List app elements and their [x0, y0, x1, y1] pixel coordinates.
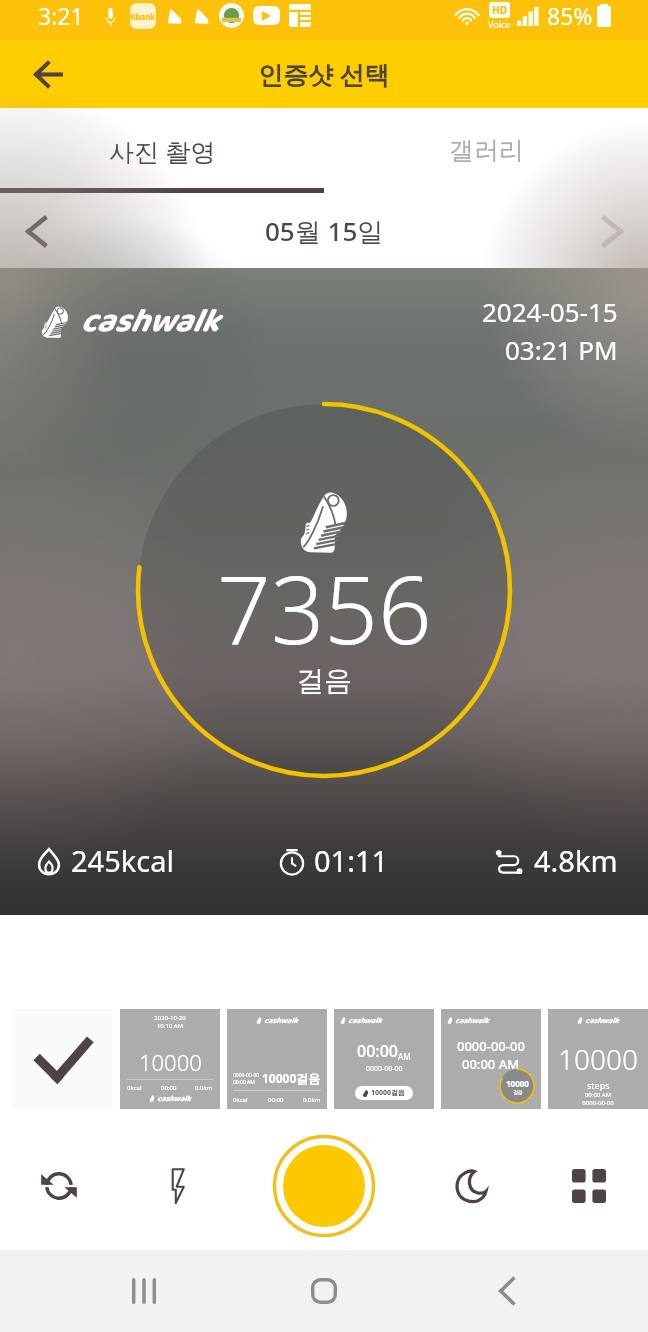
staticText: 01:11	[314, 841, 389, 880]
button[interactable]: Night mode	[436, 1152, 504, 1220]
staticText: 05월 15일	[265, 213, 384, 249]
staticText: cashwalk	[348, 1014, 382, 1027]
staticText: 10000	[506, 1078, 529, 1089]
staticText: cashwalk	[80, 295, 219, 348]
staticText: 걸음	[513, 1089, 523, 1095]
button[interactable]: cashwalk	[227, 1009, 327, 1109]
staticText: Kbank	[130, 11, 156, 22]
button[interactable]: Back	[14, 40, 82, 108]
button[interactable]	[13, 1009, 113, 1109]
staticText: 10000	[139, 1047, 202, 1077]
staticText: 7356	[217, 544, 432, 654]
staticText: 0.0km	[195, 1084, 213, 1092]
staticText: 인증샷 선택	[258, 57, 390, 91]
staticText: 0000-00-00 00:00 AM	[233, 1072, 260, 1086]
staticText: 0kcal	[127, 1084, 142, 1092]
staticText: 3:21	[38, 0, 84, 31]
button[interactable]: 갤러리	[324, 108, 648, 193]
staticText: 85%	[547, 0, 593, 31]
staticText: 00:00	[357, 1040, 398, 1062]
button[interactable]: cashwalk	[334, 1009, 434, 1109]
button[interactable]: Recents	[104, 1251, 184, 1331]
button[interactable]: Switch camera	[25, 1152, 93, 1220]
staticText: 2024-05-15	[482, 294, 618, 329]
button[interactable]: Home	[284, 1251, 364, 1331]
staticText: steps	[587, 1079, 610, 1091]
staticText: AM	[398, 1051, 411, 1062]
staticText: Voice	[488, 18, 511, 30]
button[interactable]: 2020-10-20 10:10 AM	[120, 1009, 220, 1109]
staticText: cashwalk	[264, 1014, 298, 1027]
staticText: 2020-10-20 10:10 AM	[154, 1014, 186, 1030]
staticText: 사진 촬영	[109, 134, 216, 168]
staticText: 갤러리	[449, 135, 524, 166]
button[interactable]: Shutter	[272, 1134, 376, 1238]
staticText: HD	[492, 3, 507, 17]
staticText: 00:00	[268, 1096, 284, 1104]
staticText: cashwalk	[585, 1014, 619, 1027]
staticText: 00:00 AM	[462, 1055, 520, 1073]
button[interactable]: Previous day	[12, 207, 60, 255]
staticText: 03:21 PM	[505, 332, 618, 367]
staticText: 0.0km	[303, 1096, 321, 1104]
button[interactable]: Back	[467, 1251, 547, 1331]
staticText: 0000-00-00	[457, 1037, 525, 1055]
button[interactable]: Flash	[144, 1152, 212, 1220]
staticText: 걸음	[296, 663, 352, 698]
staticText: cashwalk	[455, 1014, 489, 1027]
staticText: 10000	[558, 1040, 638, 1078]
button[interactable]: Templates	[555, 1152, 623, 1220]
staticText: 0kcal	[233, 1096, 248, 1104]
staticText: 245kcal	[71, 841, 174, 880]
button[interactable]: 사진 촬영	[0, 108, 324, 193]
staticText: 00:00	[161, 1084, 177, 1092]
staticText: 4.8km	[534, 841, 618, 880]
staticText: 10000걸음	[262, 1070, 321, 1086]
button[interactable]: cashwalk	[548, 1009, 648, 1109]
button[interactable]: Next day	[588, 207, 636, 255]
staticText: cashwalk	[157, 1092, 191, 1105]
staticText: 0000-00-00	[366, 1064, 403, 1074]
staticText: 00:00 AM 0000-00-00	[582, 1091, 614, 1107]
button[interactable]: cashwalk	[441, 1009, 541, 1109]
staticText: 10000걸음	[371, 1088, 406, 1098]
